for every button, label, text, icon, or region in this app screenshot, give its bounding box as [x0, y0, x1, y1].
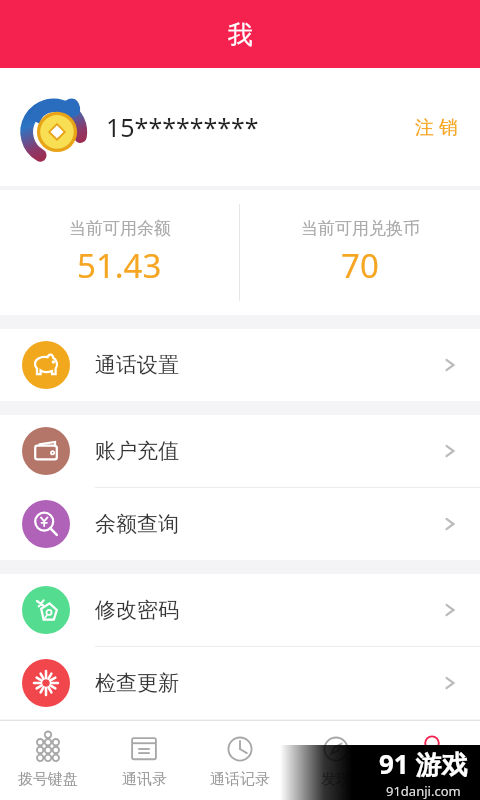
staticText: 账户充值 — [95, 438, 179, 464]
staticText: 拨号键盘 — [18, 770, 78, 789]
staticText: 通话设置 — [95, 352, 179, 378]
staticText: 91danji.com — [386, 782, 461, 800]
button[interactable]: 通话设置 — [0, 329, 480, 401]
staticText: 注 销 — [415, 114, 458, 140]
staticText: 我 — [425, 770, 440, 789]
staticText: 我 — [228, 19, 253, 50]
button[interactable]: 15********* — [0, 68, 480, 186]
button[interactable]: 检查更新 — [0, 647, 480, 719]
button[interactable]: 我 — [384, 720, 480, 800]
button[interactable]: 账户充值 — [0, 415, 480, 487]
staticText: 当前可用兑换币 — [301, 218, 420, 239]
button[interactable]: 发现 — [288, 720, 384, 800]
button[interactable]: 拨号键盘 — [0, 720, 96, 800]
staticText: 70 — [341, 243, 379, 288]
staticText: 余额查询 — [95, 511, 179, 537]
staticText: 51.43 — [77, 243, 162, 288]
staticText: 15********* — [106, 110, 259, 144]
button[interactable]: 当前可用余额 — [0, 190, 239, 315]
staticText: 发现 — [321, 770, 351, 789]
button[interactable]: 修改密码 — [0, 574, 480, 646]
button[interactable]: 注 销 — [409, 108, 464, 146]
button[interactable]: 通话记录 — [192, 720, 288, 800]
staticText: 当前可用余额 — [69, 218, 171, 239]
button[interactable]: 当前可用兑换币 — [240, 190, 480, 315]
staticText: 91 游戏 — [379, 746, 468, 782]
staticText: 通讯录 — [122, 770, 167, 789]
button[interactable]: 通讯录 — [96, 720, 192, 800]
staticText: 检查更新 — [95, 670, 179, 696]
staticText: 通话记录 — [210, 770, 270, 789]
button[interactable]: 余额查询 — [0, 488, 480, 560]
staticText: 修改密码 — [95, 597, 179, 623]
